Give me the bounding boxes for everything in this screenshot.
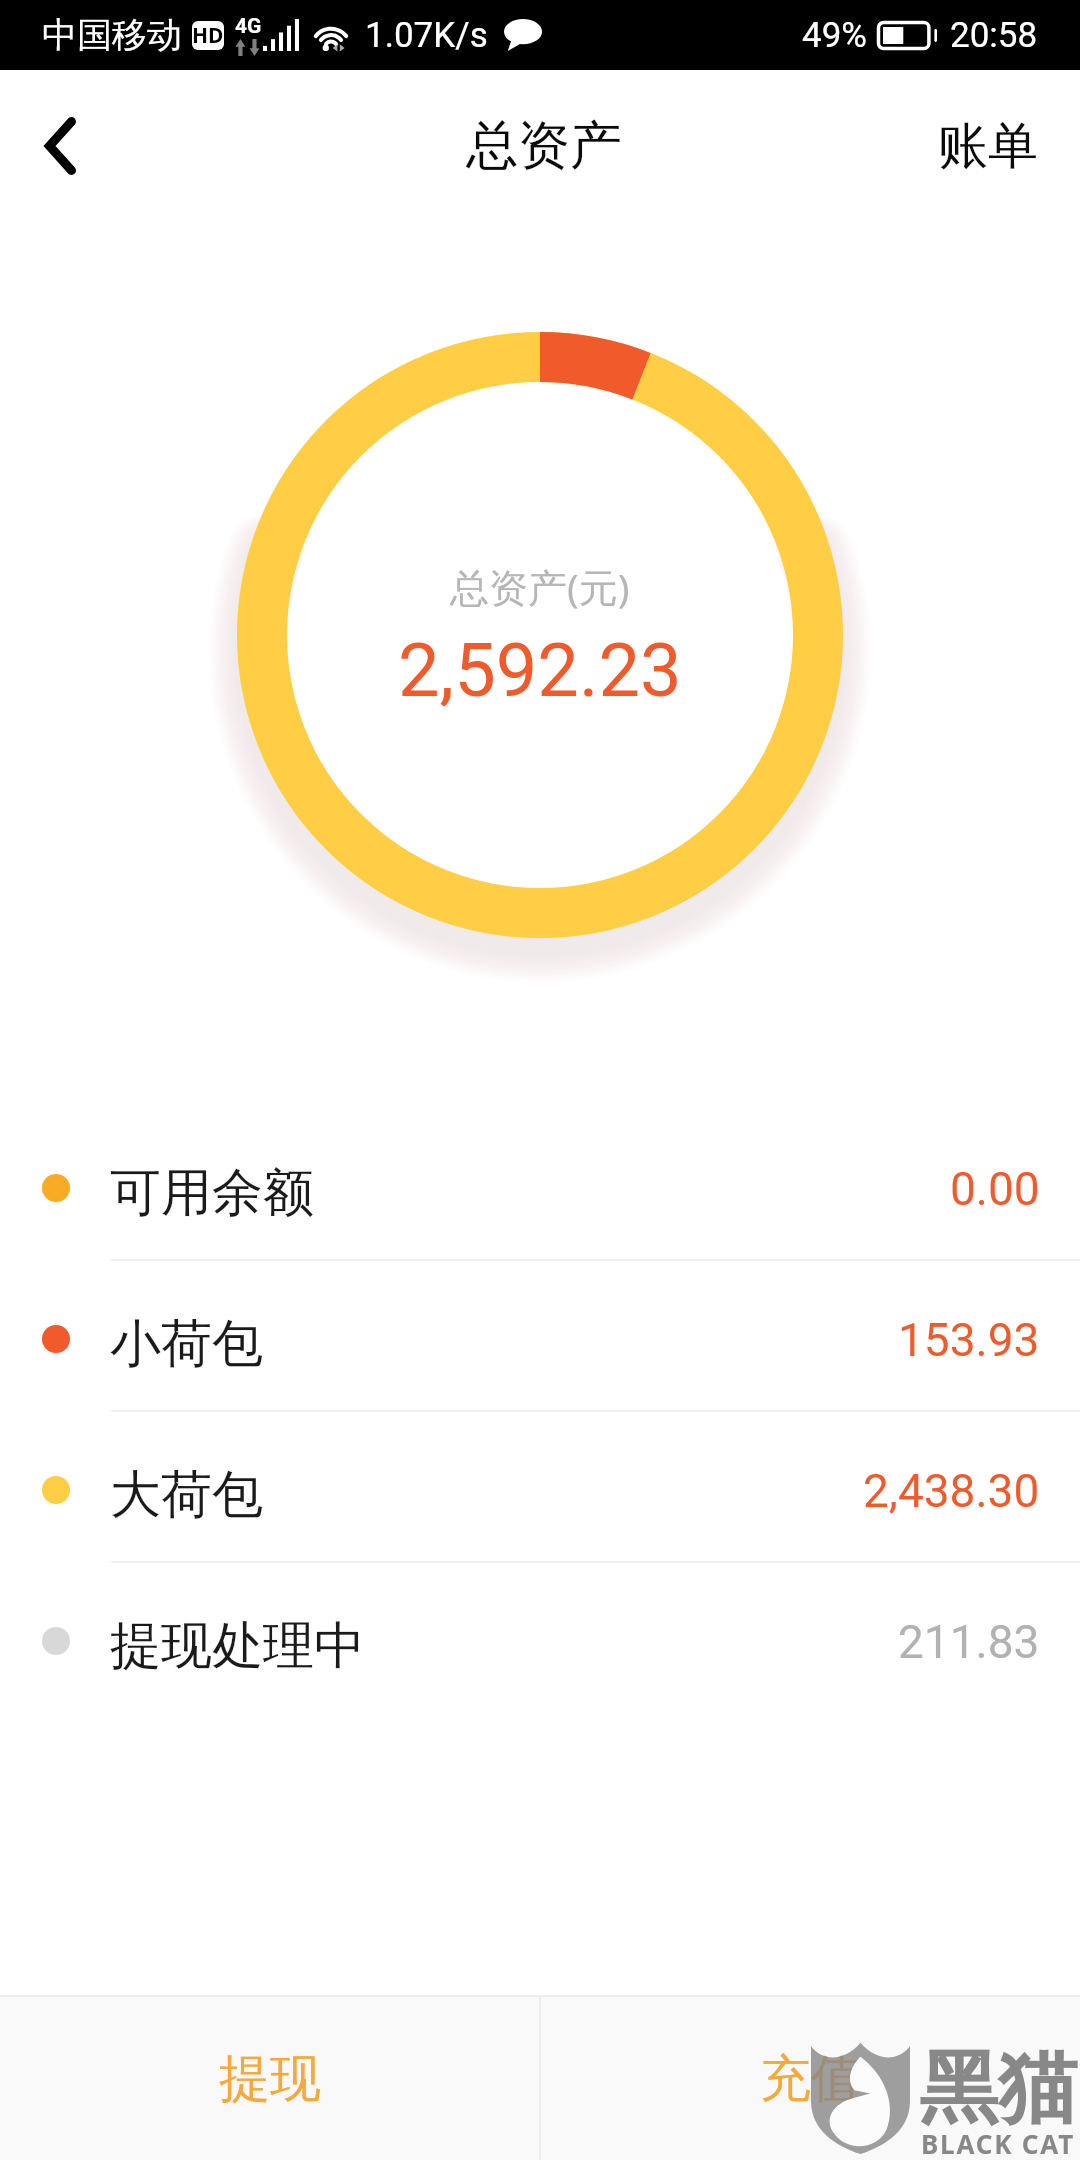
staticText: 20:58 xyxy=(950,15,1038,56)
staticText: 提现 xyxy=(219,2047,321,2111)
staticText: HD xyxy=(192,21,224,50)
staticText: 2,592.23 xyxy=(398,627,682,714)
staticText: 4G xyxy=(235,14,262,39)
button[interactable]: Back xyxy=(1,81,119,211)
staticText: 2,438.30 xyxy=(863,1464,1040,1518)
staticText: 0.00 xyxy=(950,1162,1040,1216)
staticText: 充值 xyxy=(760,2047,862,2111)
button[interactable]: 可用余额 xyxy=(0,1110,1080,1259)
button[interactable]: 充值 xyxy=(541,1997,1080,2160)
staticText: 中国移动 xyxy=(42,13,182,57)
staticText: 提现处理中 xyxy=(110,1614,365,1678)
staticText: 153.93 xyxy=(898,1313,1040,1367)
button[interactable]: 小荷包 xyxy=(0,1261,1080,1410)
button[interactable]: 提现 xyxy=(0,1997,539,2160)
button[interactable]: 提现处理中 xyxy=(0,1563,1080,1712)
button[interactable]: 大荷包 xyxy=(0,1412,1080,1561)
staticText: 黑猫 xyxy=(919,2039,1077,2139)
staticText: BLACK CAT xyxy=(921,2126,1076,2160)
staticText: 总资产(元) xyxy=(450,560,630,613)
staticText: 小荷包 xyxy=(110,1312,263,1376)
staticText: 账单 xyxy=(938,115,1038,178)
staticText: 49% xyxy=(802,15,867,56)
staticText: 1.07K/s xyxy=(365,15,488,56)
staticText: 总资产 xyxy=(466,113,622,179)
staticText: 大荷包 xyxy=(110,1463,263,1527)
staticText: 211.83 xyxy=(898,1615,1040,1669)
staticText: 可用余额 xyxy=(110,1161,314,1225)
button[interactable]: 账单 xyxy=(896,80,1080,213)
